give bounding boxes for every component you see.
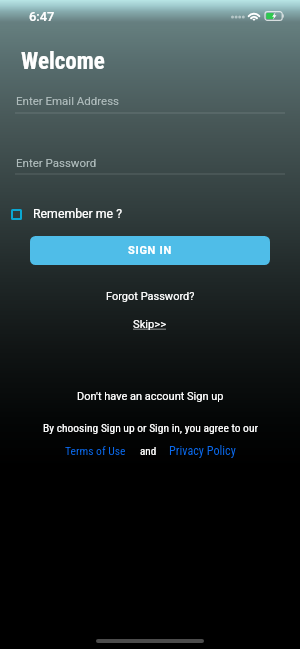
other: Battery charging bbox=[264, 11, 284, 21]
staticText: Terms of Use bbox=[65, 444, 126, 458]
staticText: and bbox=[140, 445, 157, 458]
staticText: Enter Password bbox=[16, 156, 97, 169]
button[interactable]: Remember me ? bbox=[8, 203, 128, 225]
staticText: By choosing Sign up or Sign in, you agre… bbox=[43, 421, 258, 434]
staticText: Remember me ? bbox=[33, 207, 122, 221]
staticText: Welcome bbox=[21, 48, 105, 75]
other: Cellular signal bbox=[231, 15, 243, 19]
staticText: Don't have an account Sign up bbox=[77, 390, 224, 403]
button[interactable]: Don't have an account Sign up bbox=[71, 386, 230, 407]
button[interactable]: Enter Email Address bbox=[15, 88, 285, 114]
staticText: 6:47 bbox=[29, 9, 55, 24]
staticText: Skip>> bbox=[133, 318, 167, 331]
staticText: Enter Email Address bbox=[16, 94, 120, 107]
button[interactable]: Terms of Use bbox=[65, 440, 126, 462]
other: Wi-Fi bbox=[248, 11, 260, 21]
button[interactable]: Enter Password bbox=[15, 150, 285, 175]
button[interactable]: Forgot Password? bbox=[100, 286, 201, 307]
button[interactable]: SIGN IN bbox=[30, 236, 270, 265]
staticText: Privacy Policy bbox=[169, 444, 236, 458]
button[interactable]: Privacy Policy bbox=[169, 440, 236, 462]
staticText: SIGN IN bbox=[128, 244, 172, 257]
staticText: Forgot Password? bbox=[106, 290, 195, 303]
button[interactable]: Skip>> bbox=[125, 314, 175, 335]
